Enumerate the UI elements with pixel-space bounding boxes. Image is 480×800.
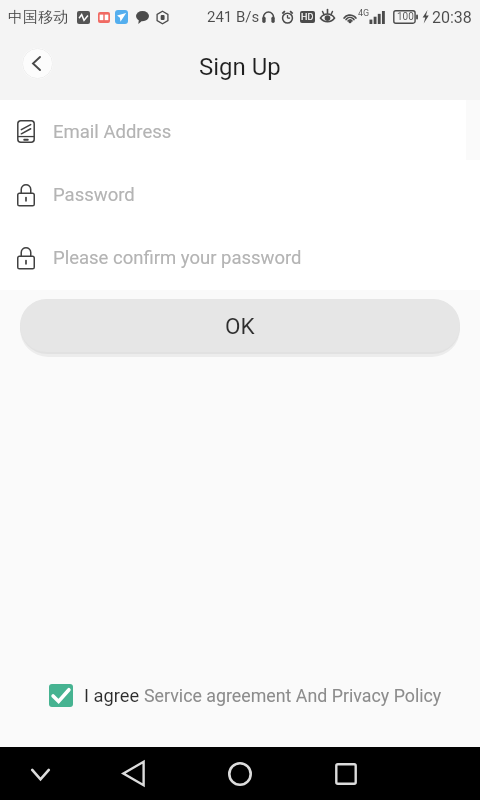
staticText: I agree (84, 685, 140, 706)
staticText: 241 B/s (207, 8, 260, 26)
staticText: HD (301, 12, 314, 23)
button[interactable]: Please confirm your password (0, 226, 480, 289)
button[interactable]: Recents (314, 747, 378, 800)
button[interactable]: OK (20, 299, 460, 352)
staticText: 中国移动 (8, 8, 68, 27)
staticText: 4G (358, 8, 370, 19)
staticText: Email Address (53, 121, 172, 143)
button[interactable]: Home (208, 747, 272, 800)
staticText: 100 (397, 11, 414, 23)
staticText: OK (225, 313, 255, 339)
button[interactable]: Back (22, 48, 53, 79)
button[interactable]: Hide keyboard (8, 747, 72, 800)
button[interactable]: Email Address (0, 100, 480, 163)
button[interactable]: Service agreement And Privacy Policy (144, 685, 442, 706)
staticText: 20:38 (432, 8, 472, 27)
staticText: Password (53, 184, 135, 206)
staticText: Sign Up (199, 53, 281, 81)
button[interactable]: I agree checkbox (49, 684, 73, 707)
button[interactable]: Password (0, 163, 480, 226)
staticText: Please confirm your password (53, 247, 302, 269)
button[interactable]: Back (101, 747, 165, 800)
